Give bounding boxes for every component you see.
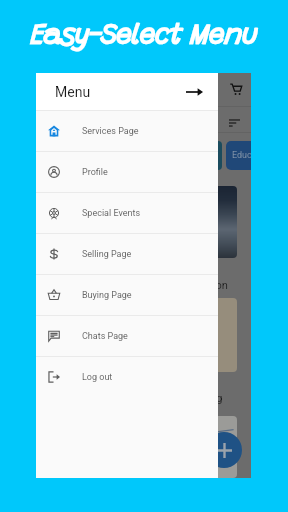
button[interactable]: Sort (229, 119, 240, 127)
staticText: Menu (55, 84, 91, 100)
staticText: Easy-Select Menu (31, 23, 258, 50)
button[interactable]: Profile (36, 152, 218, 192)
staticText: Chats Page (82, 331, 128, 342)
button[interactable]: Chats Page (36, 316, 218, 356)
staticText: Log out (82, 372, 113, 383)
button[interactable]: Menu (36, 73, 218, 110)
button[interactable]: Buying Page (36, 275, 218, 315)
staticText: Services Page (82, 126, 139, 137)
staticText: Education (232, 150, 251, 161)
button[interactable] (214, 141, 222, 170)
button[interactable]: Add (206, 432, 242, 468)
staticText: Profile (82, 167, 108, 178)
staticText: Special Events (82, 208, 141, 219)
button[interactable]: Education (226, 141, 251, 170)
button[interactable]: Cart (230, 83, 242, 96)
button[interactable]: Services Page (36, 111, 218, 151)
staticText: Education (179, 279, 228, 292)
button[interactable]: Log out (36, 357, 218, 397)
button[interactable]: Selling Page (36, 234, 218, 274)
staticText: Learning (180, 392, 223, 405)
staticText: Selling Page (82, 249, 132, 260)
staticText: Buying Page (82, 290, 132, 301)
staticText: Easy-Select Menu (31, 23, 258, 50)
button[interactable]: Special Events (36, 193, 218, 233)
